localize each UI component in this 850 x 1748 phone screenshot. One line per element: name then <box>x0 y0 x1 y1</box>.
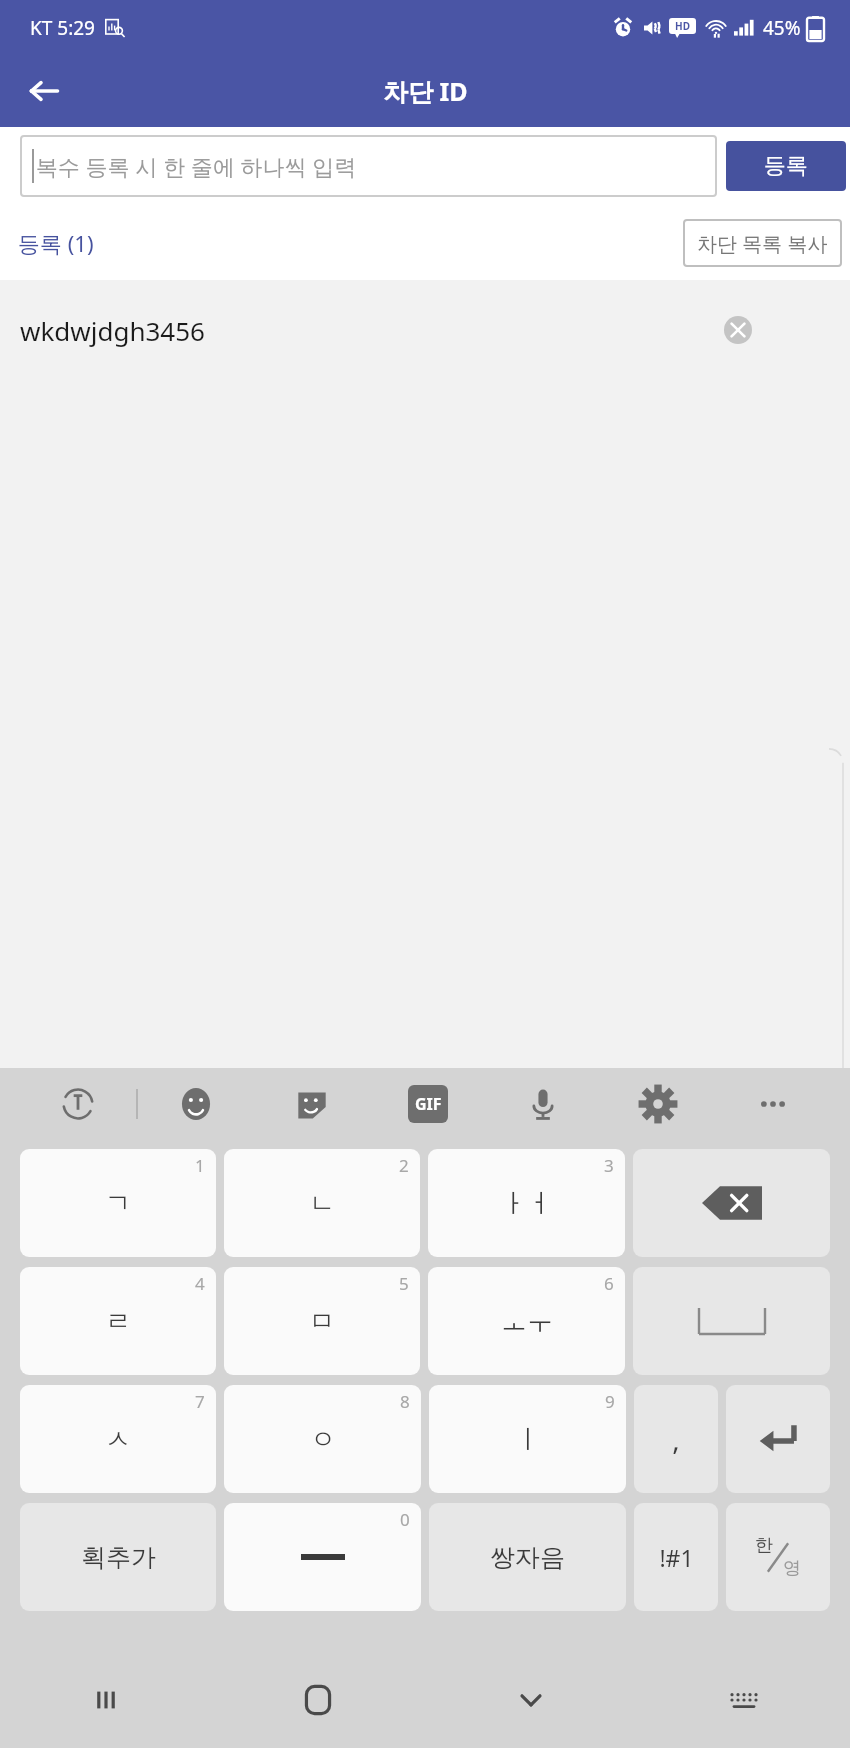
button[interactable]: Recents <box>0 1652 212 1748</box>
staticText: 차단 목록 복사 <box>697 230 828 257</box>
staticText: 복수 등록 시 한 줄에 하나씩 입력 <box>36 151 357 181</box>
button[interactable]: Korean English toggle <box>726 1503 830 1611</box>
button[interactable]: Emoji <box>138 1068 254 1140</box>
staticText: 7 <box>195 1390 205 1413</box>
staticText: ㄱ <box>105 1187 131 1220</box>
staticText: ㅗㅜ <box>501 1305 553 1338</box>
staticText: 6 <box>604 1272 614 1295</box>
button[interactable]: More options <box>715 1068 830 1140</box>
button[interactable]: Home <box>212 1652 424 1748</box>
staticText: ㄴ <box>309 1187 335 1220</box>
staticText: 차단 ID <box>383 74 468 108</box>
staticText: 획추가 <box>81 1542 156 1573</box>
button[interactable]: 5 <box>224 1267 420 1375</box>
button[interactable]: !#1 <box>634 1503 718 1611</box>
button[interactable]: Voice input <box>485 1068 600 1140</box>
button[interactable]: Enter <box>726 1385 830 1493</box>
button[interactable]: Keyboard layout <box>637 1652 850 1748</box>
staticText: 3 <box>604 1154 614 1177</box>
button[interactable]: 쌍자음 <box>429 1503 626 1611</box>
button[interactable]: Backspace <box>633 1149 830 1257</box>
staticText: wkdwjdgh3456 <box>20 313 205 348</box>
staticText: ㄹ <box>105 1305 131 1338</box>
staticText: 9 <box>605 1390 615 1413</box>
staticText: 8 <box>400 1390 410 1413</box>
button[interactable]: Back <box>14 61 74 121</box>
button[interactable]: GIF <box>370 1068 485 1140</box>
staticText: 0 <box>400 1508 410 1531</box>
button[interactable]: Stickers <box>254 1068 370 1140</box>
staticText: 45% <box>763 15 801 41</box>
button[interactable]: 등록 <box>726 141 846 191</box>
staticText: , <box>672 1420 680 1458</box>
button[interactable]: 3 <box>428 1149 625 1257</box>
staticText: ㅣ <box>515 1423 541 1456</box>
button[interactable]: Remove <box>716 308 760 352</box>
button[interactable]: 8 <box>224 1385 421 1493</box>
staticText: 1 <box>195 1154 205 1177</box>
button[interactable]: Hide keyboard <box>424 1652 637 1748</box>
staticText: KT 5:29 <box>30 15 95 41</box>
staticText: 영 <box>783 1557 801 1580</box>
staticText: GIF <box>415 1093 442 1115</box>
button[interactable]: 9 <box>429 1385 626 1493</box>
staticText: 한 <box>755 1534 773 1557</box>
button[interactable]: 2 <box>224 1149 420 1257</box>
staticText: HD <box>675 19 690 33</box>
staticText: 2 <box>399 1154 409 1177</box>
button[interactable]: 6 <box>428 1267 625 1375</box>
staticText: 쌍자음 <box>490 1542 565 1573</box>
staticText: 4 <box>195 1272 205 1295</box>
button[interactable]: Space <box>633 1267 830 1375</box>
staticText: ㅅ <box>105 1423 131 1456</box>
button[interactable]: 복수 등록 시 한 줄에 하나씩 입력 <box>20 135 717 197</box>
button[interactable]: 1 <box>20 1149 216 1257</box>
staticText: !#1 <box>659 1542 694 1573</box>
staticText: 등록 <box>764 152 808 180</box>
staticText: ㅇ <box>310 1423 336 1456</box>
button[interactable]: Translate <box>20 1068 136 1140</box>
staticText: ㅁ <box>309 1305 335 1338</box>
button[interactable]: ㅡ <box>224 1503 421 1611</box>
button[interactable]: 등록 (1) <box>18 228 94 258</box>
button[interactable]: wkdwjdgh3456 <box>0 280 850 380</box>
staticText: ㅏㅓ <box>501 1187 553 1220</box>
button[interactable]: , <box>634 1385 718 1493</box>
button[interactable]: 차단 목록 복사 <box>683 219 842 267</box>
button[interactable]: Settings <box>600 1068 715 1140</box>
staticText: 5 <box>399 1272 409 1295</box>
button[interactable]: 4 <box>20 1267 216 1375</box>
button[interactable]: 7 <box>20 1385 216 1493</box>
button[interactable]: 획추가 <box>20 1503 216 1611</box>
